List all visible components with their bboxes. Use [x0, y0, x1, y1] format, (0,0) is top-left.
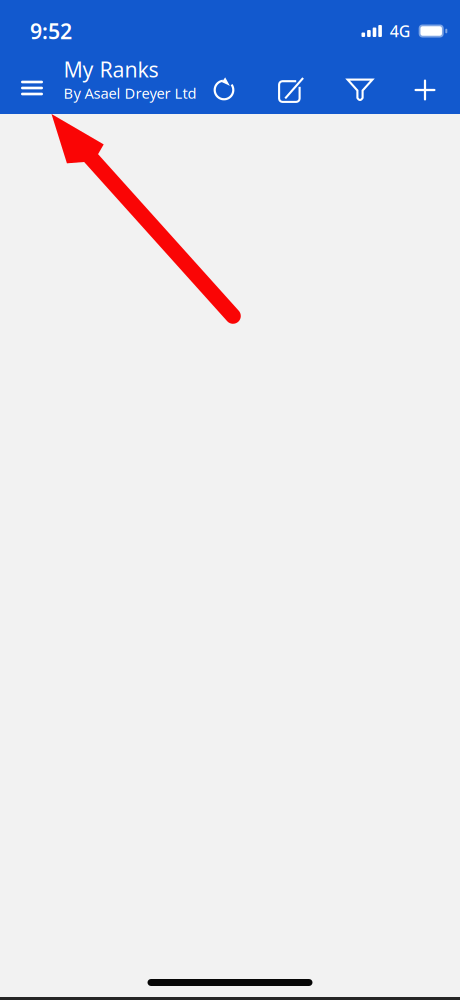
staticText: 9:52 — [30, 17, 72, 45]
button[interactable]: Menu — [10, 63, 54, 113]
staticText: My Ranks — [63, 55, 158, 83]
staticText: By Asael Dreyer Ltd — [63, 83, 196, 103]
button[interactable]: Add — [399, 65, 451, 115]
button[interactable]: Filter — [334, 65, 386, 115]
button[interactable]: Refresh — [198, 65, 250, 115]
button[interactable]: Compose — [265, 65, 317, 115]
staticText: 4G — [390, 20, 411, 42]
